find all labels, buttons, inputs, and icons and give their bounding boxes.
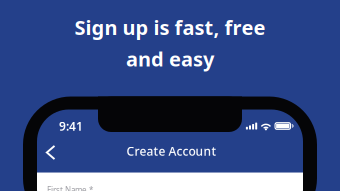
- button[interactable]: Back: [37, 139, 66, 166]
- staticText: First Name *: [47, 184, 93, 191]
- staticText: Sign up is fast, free: [74, 14, 265, 41]
- staticText: 9:41: [59, 118, 83, 134]
- staticText: Create Account: [126, 143, 216, 159]
- button[interactable]: Create Account: [115, 138, 225, 166]
- staticText: and easy: [126, 46, 214, 72]
